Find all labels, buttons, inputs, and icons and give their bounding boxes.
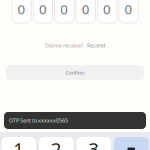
staticText: 2	[51, 137, 62, 150]
button[interactable]: OTP digit	[12, 0, 31, 23]
staticText: 1	[13, 137, 24, 150]
staticText: 0	[124, 0, 132, 18]
button[interactable]: 2	[39, 137, 73, 150]
button[interactable]: 3	[76, 137, 111, 150]
staticText: 0	[17, 0, 25, 18]
button[interactable]: 1	[1, 137, 36, 150]
button[interactable]: OTP digit	[76, 0, 95, 23]
button[interactable]: OTP digit	[97, 0, 117, 23]
staticText: 0	[39, 0, 47, 18]
staticText: 3	[88, 137, 99, 150]
staticText: Did not receive?	[45, 42, 83, 49]
staticText: 0	[60, 0, 68, 18]
button[interactable]: Delete	[114, 137, 148, 150]
button[interactable]: OTP digit	[119, 0, 138, 23]
staticText: Confirm	[65, 69, 84, 76]
staticText: 0	[103, 0, 111, 18]
button[interactable]: Confirm	[6, 65, 144, 80]
button[interactable]: OTP digit	[55, 0, 74, 23]
button[interactable]: OTP digit	[33, 0, 52, 23]
staticText: 0	[82, 0, 90, 18]
button[interactable]: Resend	[87, 42, 105, 49]
staticText: OTP Sent to xxxxxx0565	[9, 117, 68, 124]
staticText: Resend	[87, 42, 105, 49]
